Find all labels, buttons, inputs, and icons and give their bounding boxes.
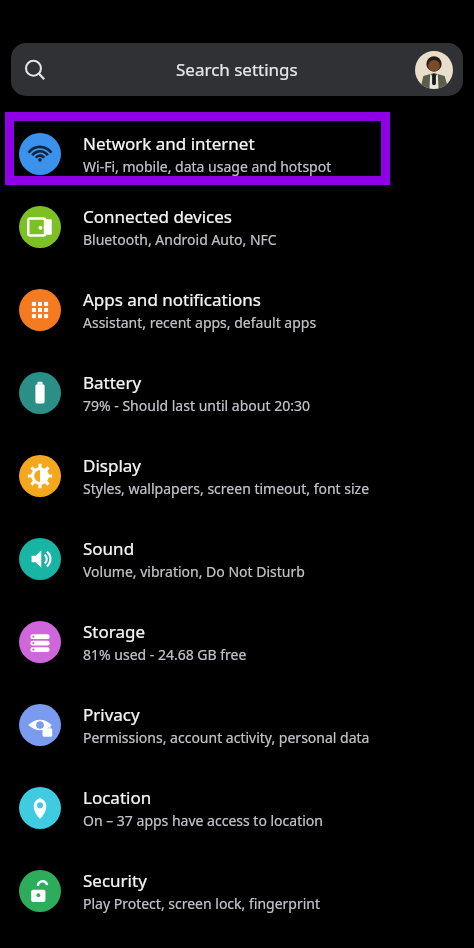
staticText: Search settings: [176, 58, 298, 81]
staticText: Connected devices: [83, 205, 233, 228]
staticText: Assistant, recent apps, default apps: [83, 313, 317, 332]
staticText: On – 37 apps have access to location: [83, 811, 323, 830]
staticText: Volume, vibration, Do Not Disturb: [83, 562, 305, 581]
staticText: Privacy: [83, 703, 140, 726]
staticText: Play Protect, screen lock, fingerprint: [83, 894, 321, 913]
staticText: Network and internet: [83, 132, 255, 155]
button[interactable]: Network and internet: [0, 112, 474, 181]
staticText: Security: [83, 869, 147, 892]
staticText: Wi-Fi, mobile, data usage and hotspot: [83, 157, 332, 176]
staticText: Sound: [83, 537, 135, 560]
staticText: Apps and notifications: [83, 288, 261, 311]
button[interactable]: Security: [0, 849, 474, 932]
staticText: Bluetooth, Android Auto, NFC: [83, 230, 277, 249]
button[interactable]: Location: [0, 766, 474, 849]
button[interactable]: Sound: [0, 517, 474, 600]
staticText: Styles, wallpapers, screen timeout, font…: [83, 479, 370, 498]
button[interactable]: Storage: [0, 600, 474, 683]
staticText: Permissions, account activity, personal …: [83, 728, 370, 747]
button[interactable]: Apps and notifications: [0, 268, 474, 351]
button[interactable]: Account: [415, 51, 453, 89]
button[interactable]: Display: [0, 434, 474, 517]
button[interactable]: Connected devices: [0, 185, 474, 268]
staticText: Location: [83, 786, 152, 809]
staticText: Battery: [83, 371, 142, 394]
button[interactable]: Search settings: [11, 43, 463, 96]
button[interactable]: Privacy: [0, 683, 474, 766]
button[interactable]: Battery: [0, 351, 474, 434]
staticText: Storage: [83, 620, 146, 643]
staticText: 79% - Should last until about 20:30: [83, 396, 310, 415]
staticText: Display: [83, 454, 141, 477]
staticText: 81% used - 24.68 GB free: [83, 645, 247, 664]
